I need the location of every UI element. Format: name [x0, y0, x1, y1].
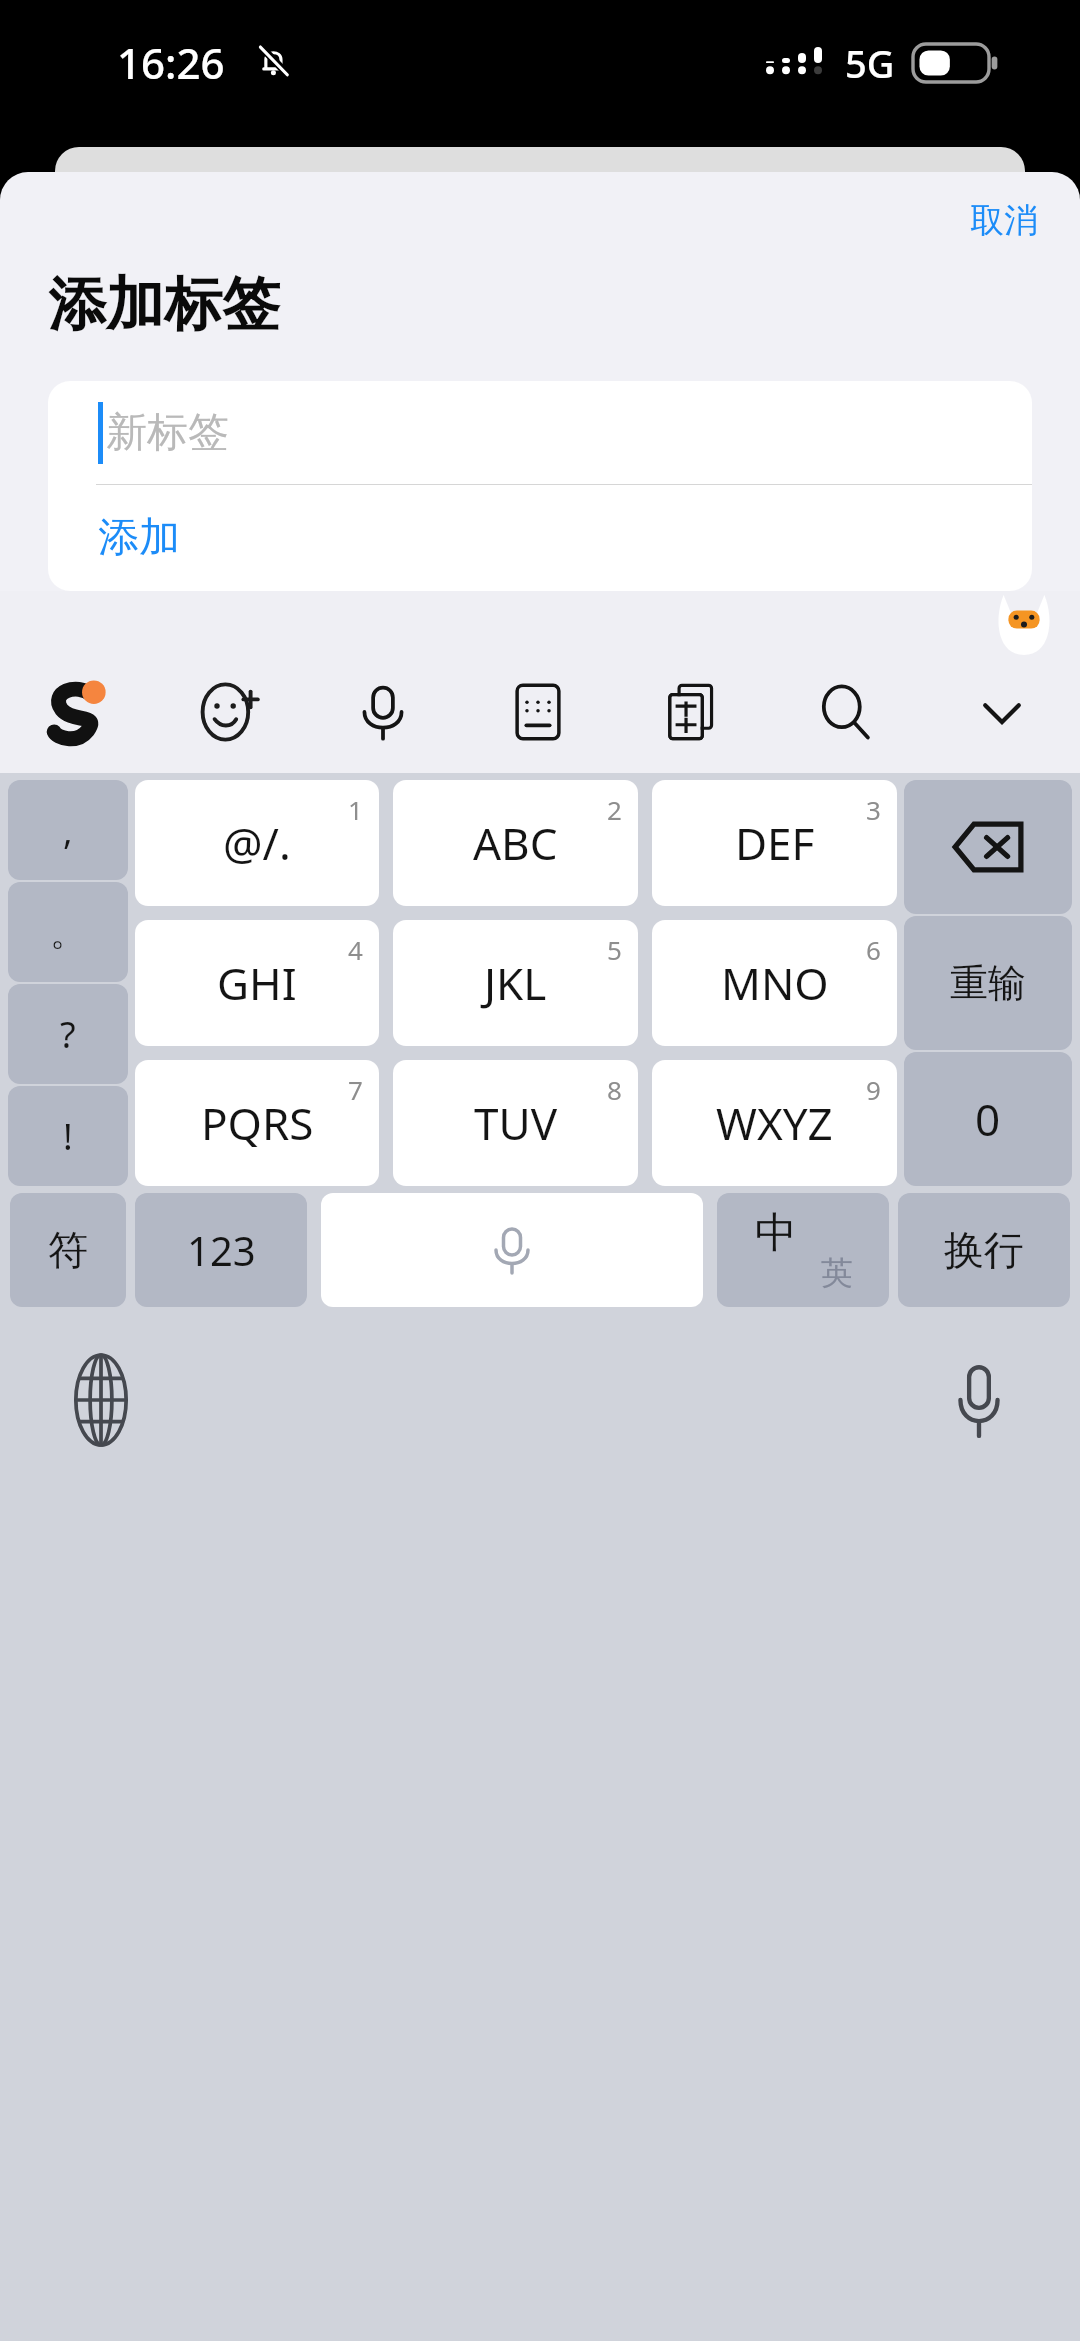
staticText: 1 [348, 792, 363, 827]
button[interactable]: , [8, 780, 128, 880]
staticText: ! [63, 1112, 73, 1161]
staticText: 7 [348, 1072, 363, 1107]
staticText: PQRS [201, 1093, 314, 1153]
button[interactable]: 4 [135, 920, 379, 1046]
staticText: TUV [474, 1093, 558, 1153]
staticText: 取消 [970, 199, 1038, 242]
button[interactable]: 。 [8, 882, 128, 982]
button[interactable]: 5 [393, 920, 638, 1046]
staticText: @/. [223, 813, 291, 873]
button[interactable]: ! [8, 1086, 128, 1186]
staticText: 添加标签 [48, 268, 280, 341]
button[interactable]: ? [8, 984, 128, 1084]
button[interactable]: 9 [652, 1060, 897, 1186]
staticText: 5 [607, 932, 622, 967]
staticText: 0 [975, 1089, 1001, 1149]
button[interactable]: Voice input [331, 660, 435, 764]
staticText: JKL [484, 953, 547, 1013]
button[interactable]: 6 [652, 920, 897, 1046]
staticText: GHI [217, 953, 297, 1013]
button[interactable]: 0 [904, 1052, 1072, 1186]
staticText: 5G [845, 37, 895, 89]
staticText: ABC [473, 813, 558, 873]
button[interactable]: Voice input [321, 1193, 703, 1307]
button[interactable]: 3 [652, 780, 897, 906]
button[interactable]: Hide keyboard [950, 660, 1054, 764]
staticText: MNO [721, 953, 829, 1013]
button[interactable]: Delete [904, 780, 1072, 914]
staticText: 9 [866, 1072, 881, 1107]
staticText: ? [60, 1010, 76, 1059]
button[interactable]: 新标签 [48, 381, 1032, 484]
button[interactable]: 重输 [904, 916, 1072, 1050]
staticText: DEF [735, 813, 815, 873]
staticText: , [63, 806, 73, 855]
button[interactable]: 123 [135, 1193, 307, 1307]
staticText: 2 [607, 792, 622, 827]
button[interactable]: 取消 [956, 189, 1052, 252]
staticText: 4 [348, 932, 363, 967]
button[interactable]: Dictation [934, 1355, 1024, 1445]
button[interactable]: 换行 [898, 1193, 1070, 1307]
button[interactable]: Switch language [56, 1355, 146, 1445]
button[interactable]: 符 [10, 1193, 126, 1307]
staticText: 符 [48, 1225, 88, 1275]
staticText: 重输 [950, 959, 1026, 1007]
staticText: 英 [821, 1253, 853, 1293]
staticText: 3 [866, 792, 881, 827]
staticText: 新标签 [106, 407, 229, 459]
button[interactable]: Chinese English toggle [717, 1193, 889, 1307]
button[interactable]: 1 [135, 780, 379, 906]
staticText: 6 [866, 932, 881, 967]
button[interactable]: Translate [641, 660, 745, 764]
button[interactable]: Keyboard settings [486, 660, 590, 764]
button[interactable]: Emoji [177, 660, 281, 764]
staticText: 123 [187, 1223, 256, 1277]
staticText: 。 [50, 910, 86, 955]
button[interactable]: 2 [393, 780, 638, 906]
staticText: 中 [755, 1207, 797, 1260]
staticText: 添加 [98, 512, 180, 564]
staticText: 16:26 [117, 34, 225, 91]
button[interactable]: 添加 [48, 485, 1032, 591]
staticText: 换行 [944, 1225, 1024, 1275]
button[interactable]: Sogou input [22, 660, 126, 764]
staticText: 8 [607, 1072, 622, 1107]
staticText: WXYZ [716, 1093, 833, 1153]
button[interactable]: 7 [135, 1060, 379, 1186]
button[interactable]: 8 [393, 1060, 638, 1186]
button[interactable]: Search [795, 660, 899, 764]
